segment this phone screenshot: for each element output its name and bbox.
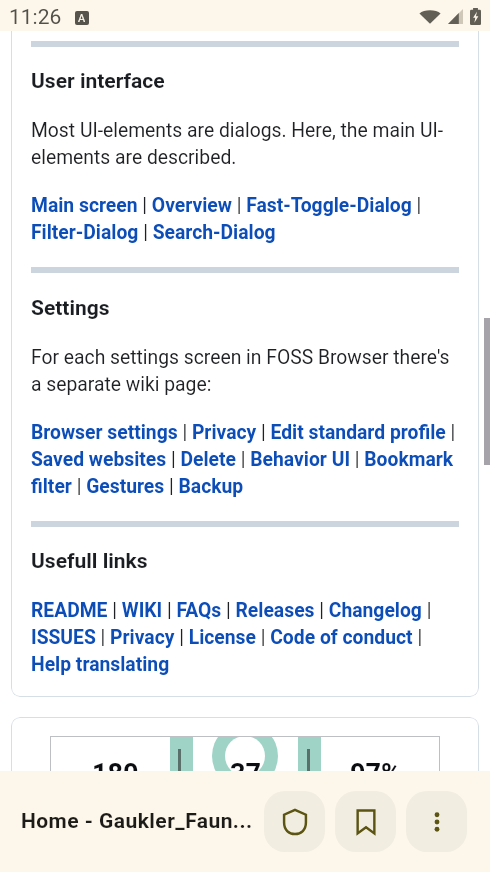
button[interactable]: More options: [406, 791, 467, 852]
staticText: Most UI-elements are dialogs. Here, the …: [31, 119, 459, 169]
staticText: 97%: [350, 758, 401, 771]
staticText: Usefull links: [31, 549, 148, 574]
staticText: 11:26: [9, 5, 62, 30]
staticText: User interface: [31, 69, 165, 94]
button[interactable]: Main screen | Overview | Fast-Toggle-Dia…: [31, 194, 459, 244]
staticText: For each settings screen in FOSS Browser…: [31, 346, 459, 396]
staticText: 37: [230, 758, 261, 771]
button[interactable]: Bookmarks: [335, 791, 396, 852]
staticText: A: [78, 12, 86, 25]
button[interactable]: Security: [264, 791, 325, 852]
button[interactable]: Browser settings | Privacy | Edit standa…: [31, 421, 459, 498]
staticText: Settings: [31, 296, 110, 321]
button[interactable]: README | WIKI | FAQs | Releases | Change…: [31, 599, 459, 676]
staticText: Home - Gaukler_Faun...: [21, 809, 264, 834]
staticText: 180: [92, 758, 139, 771]
